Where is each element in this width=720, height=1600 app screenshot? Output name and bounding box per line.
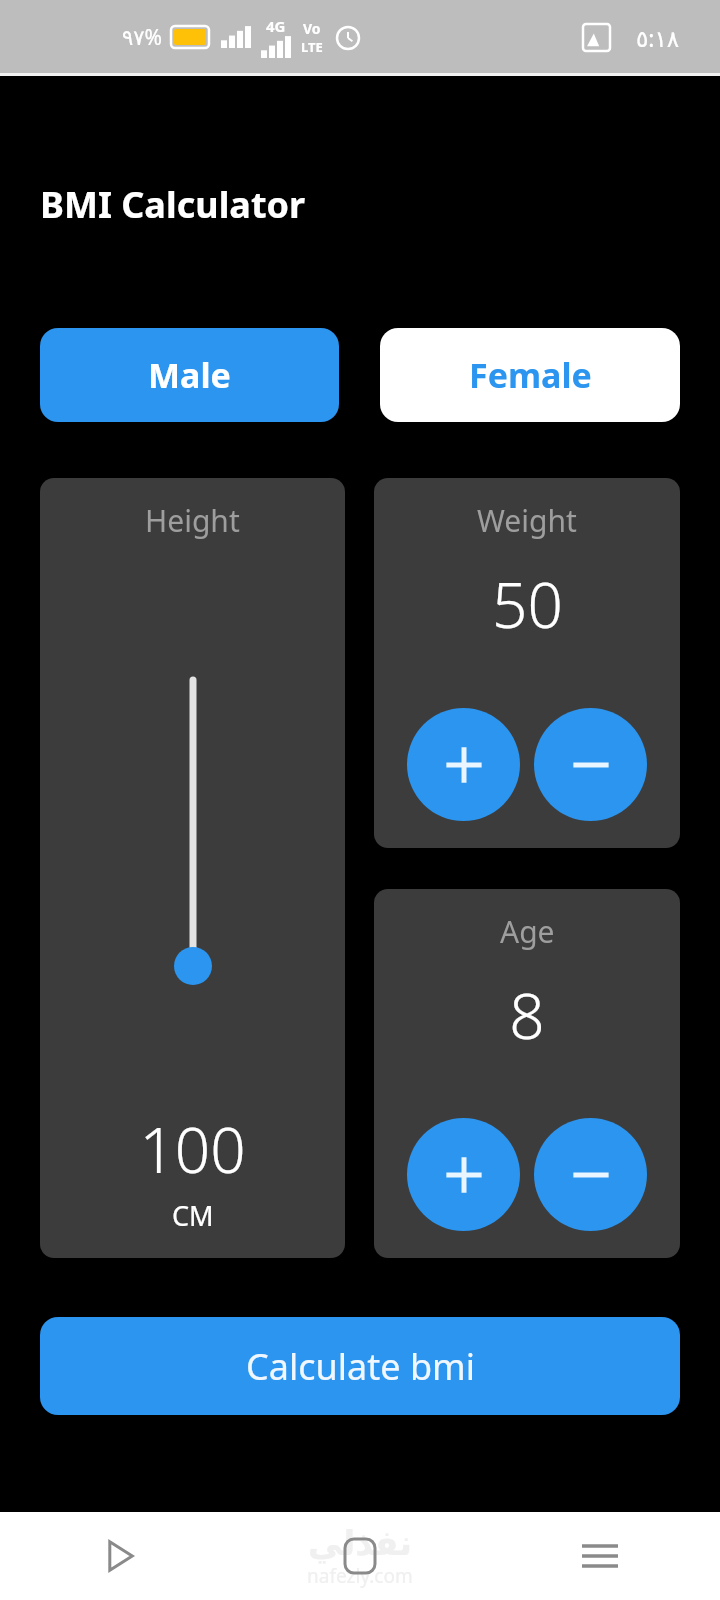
staticText: نفذلي [308, 1523, 413, 1563]
button[interactable]: Age [374, 889, 680, 1258]
button[interactable]: Calculate bmi [40, 1317, 680, 1415]
staticText: Calculate bmi [246, 1342, 475, 1391]
button[interactable]: Back [0, 1512, 240, 1600]
button[interactable]: Male [40, 328, 339, 422]
button[interactable]: Decrease Weight [534, 708, 647, 821]
staticText: Vo [303, 19, 321, 38]
staticText: 4G [266, 16, 286, 36]
button[interactable]: Increase Age [407, 1118, 520, 1231]
staticText: Height [145, 500, 240, 541]
button[interactable]: Increase Weight [407, 708, 520, 821]
staticText: LTE [301, 38, 323, 56]
staticText: Age [500, 911, 555, 952]
staticText: CM [172, 1197, 214, 1234]
staticText: ٩٧% [122, 23, 163, 52]
button[interactable]: Recents [480, 1512, 720, 1600]
staticText: Weight [477, 500, 577, 541]
button[interactable]: Weight [374, 478, 680, 848]
button[interactable]: Female [380, 328, 680, 422]
staticText: ٥:١٨ [636, 22, 680, 53]
staticText: 50 [492, 562, 563, 646]
button[interactable]: Decrease Age [534, 1118, 647, 1231]
staticText: BMI Calculator [40, 180, 306, 229]
staticText: 8 [509, 973, 545, 1057]
staticText: Female [469, 352, 592, 398]
staticText: nafezly.com [307, 1563, 413, 1589]
staticText: 100 [139, 1107, 246, 1191]
staticText: Male [148, 352, 231, 398]
button[interactable]: Home [240, 1512, 480, 1600]
button[interactable]: Height [40, 478, 345, 1258]
